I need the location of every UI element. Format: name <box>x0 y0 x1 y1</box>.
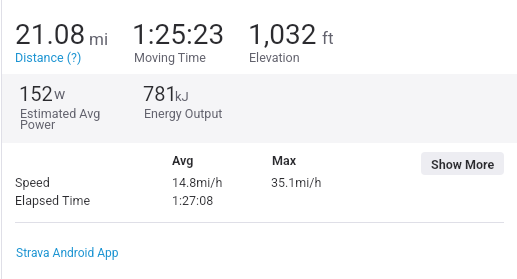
staticText: kJ <box>175 89 189 104</box>
button[interactable]: Show More <box>421 152 504 175</box>
staticText: 1:25:23 <box>132 18 225 51</box>
staticText: 21.08 <box>15 18 86 51</box>
staticText: mi <box>89 29 109 49</box>
staticText: Max <box>272 153 296 168</box>
button[interactable]: Distance (?) <box>15 50 82 65</box>
staticText: Strava Android App <box>16 246 119 260</box>
staticText: 781 <box>143 82 177 105</box>
staticText: Speed <box>15 175 50 190</box>
staticText: Energy Output <box>144 106 223 121</box>
staticText: Elevation <box>249 50 300 65</box>
staticText: 35.1mi/h <box>271 175 322 190</box>
staticText: 152 <box>19 82 53 105</box>
button[interactable]: Strava Android App <box>16 246 119 260</box>
staticText: Elapsed Time <box>15 193 91 208</box>
staticText: Avg <box>172 153 194 168</box>
staticText: Estimated Avg <box>20 106 101 121</box>
staticText: w <box>54 85 66 103</box>
staticText: Distance (?) <box>15 50 82 65</box>
staticText: Power <box>20 117 56 132</box>
staticText: Moving Time <box>134 50 206 65</box>
staticText: ft <box>322 28 334 48</box>
staticText: 1:27:08 <box>172 193 214 208</box>
staticText: 1,032 <box>248 18 317 51</box>
staticText: Show More <box>431 157 495 172</box>
staticText: 14.8mi/h <box>172 175 223 190</box>
